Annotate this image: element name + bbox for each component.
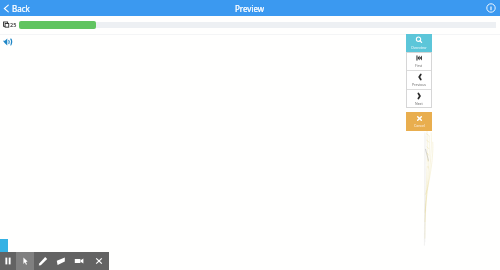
button[interactable]: Previous (406, 71, 432, 89)
button[interactable]: Close (88, 252, 109, 270)
staticText: First (415, 63, 423, 68)
staticText: 25 (10, 21, 17, 28)
button[interactable]: Back (0, 0, 34, 16)
button[interactable]: Info (486, 3, 496, 13)
button[interactable]: First (406, 52, 432, 70)
button[interactable]: Cancel (406, 112, 432, 131)
button[interactable]: Overview (406, 34, 432, 52)
staticText: Back (12, 3, 30, 14)
staticText: Next (415, 101, 423, 106)
staticText: Cancel (414, 123, 425, 128)
button[interactable]: Audio (2, 36, 14, 48)
button[interactable]: Highlighter (52, 252, 70, 270)
staticText: Preview (235, 3, 265, 14)
button[interactable]: Record (70, 252, 88, 270)
staticText: Overview (411, 45, 427, 50)
button[interactable]: Select (16, 252, 34, 270)
button[interactable]: Pause (0, 252, 16, 270)
button[interactable]: Pen (34, 252, 52, 270)
button[interactable]: Next (406, 90, 432, 108)
staticText: Previous (412, 82, 427, 87)
